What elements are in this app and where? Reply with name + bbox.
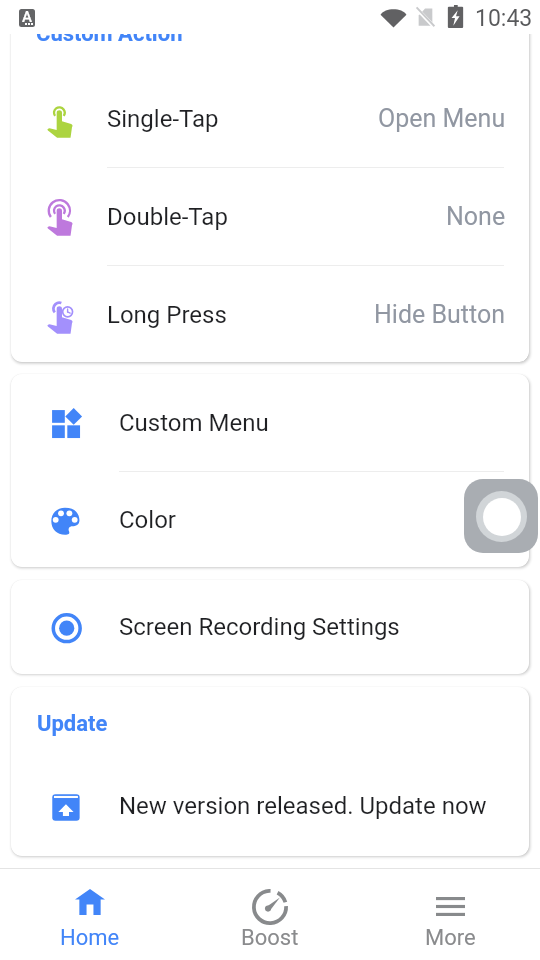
button[interactable]: Color: [11, 472, 529, 567]
staticText: New version released. Update now: [119, 792, 487, 820]
button[interactable]: Assistive touch floating button: [464, 479, 538, 553]
button[interactable]: Home: [0, 869, 180, 960]
staticText: Open Menu: [378, 104, 506, 133]
staticText: Single-Tap: [107, 105, 219, 133]
other: App notification: [19, 9, 35, 27]
staticText: A: [22, 9, 32, 26]
staticText: Home: [60, 925, 120, 951]
button[interactable]: Boost: [180, 869, 360, 960]
staticText: Custom Action: [36, 21, 183, 47]
staticText: More: [425, 925, 476, 951]
staticText: Update: [37, 711, 108, 737]
button[interactable]: New version released. Update now: [11, 759, 529, 853]
button[interactable]: Custom Menu: [11, 374, 529, 471]
staticText: Hide Button: [374, 300, 506, 329]
button[interactable]: Double-Tap: [11, 168, 529, 265]
staticText: Long Press: [107, 301, 227, 329]
staticText: Boost: [241, 925, 299, 951]
staticText: Screen Recording Settings: [119, 613, 400, 641]
button[interactable]: Screen Recording Settings: [11, 580, 529, 674]
staticText: Color: [119, 506, 176, 534]
staticText: 10:43: [475, 5, 533, 32]
button[interactable]: More: [360, 869, 540, 960]
staticText: None: [446, 202, 506, 231]
staticText: Custom Menu: [119, 409, 269, 437]
button[interactable]: Long Press: [11, 266, 529, 362]
button[interactable]: Single-Tap: [11, 70, 529, 167]
staticText: Double-Tap: [107, 203, 228, 231]
